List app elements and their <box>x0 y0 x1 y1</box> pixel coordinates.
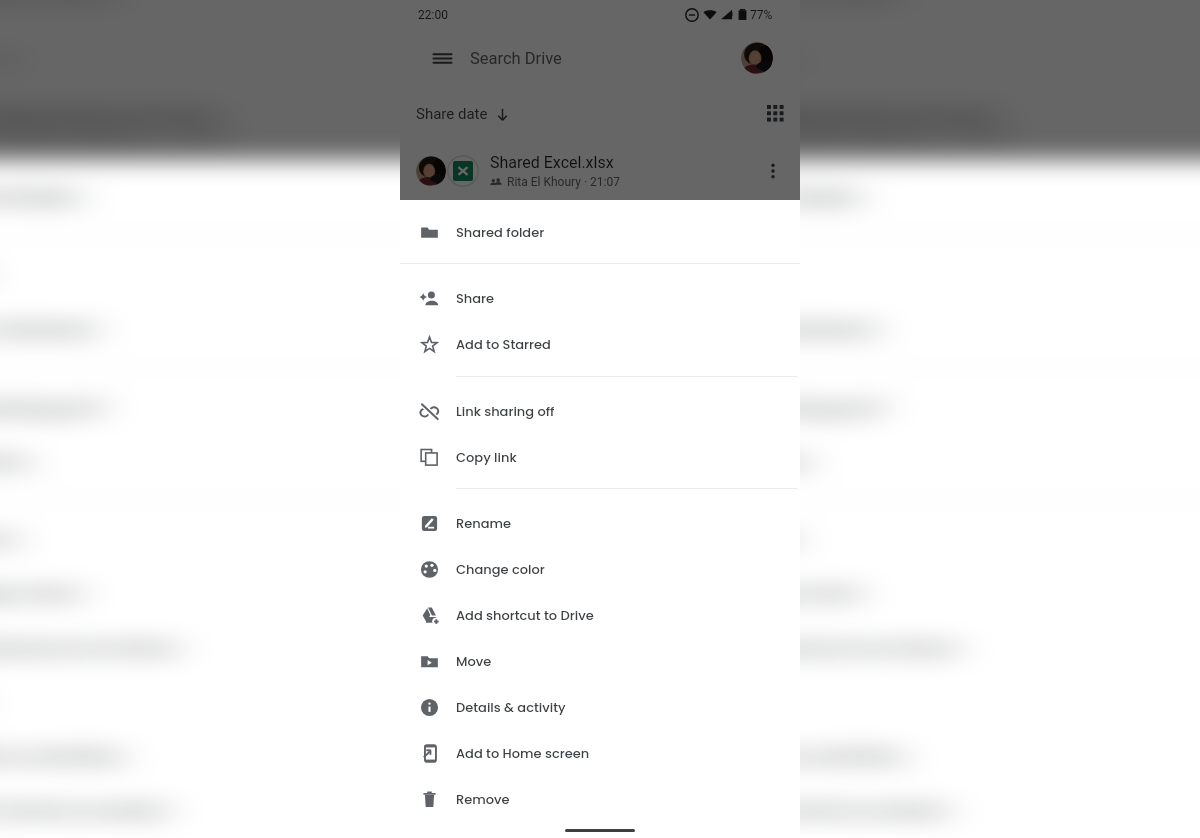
staticText: Shared folder <box>0 187 83 208</box>
button[interactable]: Details & activity <box>400 684 800 730</box>
staticText: Copy link <box>456 448 517 466</box>
other: Open navigation menu <box>433 49 452 68</box>
button[interactable]: Rename <box>400 500 800 546</box>
staticText: Add to Starred <box>689 319 874 340</box>
button[interactable]: Remove <box>400 776 800 822</box>
staticText: Rename <box>456 514 512 532</box>
staticText: Shared Excel.xlsx <box>490 153 614 172</box>
staticText: Details & activity <box>0 745 124 766</box>
button[interactable]: Add shortcut to Drive <box>0 621 580 675</box>
button[interactable]: Shared folder <box>580 171 1200 225</box>
staticText: Link sharing off <box>0 397 102 418</box>
button[interactable]: Link sharing off <box>0 381 580 435</box>
staticText: Add shortcut to Drive <box>689 637 958 658</box>
button[interactable]: Share <box>400 275 800 321</box>
staticText: Shared folder <box>689 187 863 208</box>
staticText: Add to Home screen <box>456 744 590 762</box>
button[interactable]: Switch to grid view <box>516 48 551 69</box>
button[interactable]: More options <box>762 160 784 182</box>
staticText: Remove <box>456 790 510 808</box>
staticText: Rita El Khoury · 21:07 <box>507 175 620 189</box>
staticText: Add to Home screen <box>0 799 170 820</box>
staticText: Share date <box>416 105 488 123</box>
staticText: Change color <box>0 583 83 604</box>
staticText: Copy link <box>0 451 28 473</box>
button[interactable]: Add to Starred <box>580 302 1200 356</box>
staticText: Add to Starred <box>456 335 551 353</box>
button[interactable]: Open navigation menu <box>0 0 547 22</box>
staticText: Rita El Khoury · 21:07 <box>9 131 229 147</box>
staticText: Link sharing off <box>689 397 882 418</box>
staticText: Link sharing off <box>456 402 555 420</box>
button[interactable]: Copy link <box>0 435 580 489</box>
button[interactable]: Add shortcut to Drive <box>400 592 800 638</box>
staticText: Search Drive <box>470 49 562 68</box>
staticText: Add to Home screen <box>689 799 950 820</box>
button[interactable]: Share <box>0 248 580 302</box>
staticText: Copy link <box>689 451 808 473</box>
staticText: 22:00 <box>418 8 448 22</box>
button[interactable]: Add to Home screen <box>580 783 1200 837</box>
staticText: Shared folder <box>456 223 545 241</box>
staticText: Share date <box>611 48 752 69</box>
button[interactable]: Change color <box>580 566 1200 620</box>
button[interactable]: Move <box>400 638 800 684</box>
button[interactable]: Share date <box>416 99 510 129</box>
button[interactable]: Open navigation menu <box>417 33 783 83</box>
button[interactable]: Account <box>741 42 773 74</box>
staticText: Details & activity <box>689 745 904 766</box>
staticText: Rita El Khoury · 21:07 <box>789 131 1009 147</box>
button[interactable]: Add to Starred <box>0 302 580 356</box>
staticText: Search Drive <box>716 0 896 5</box>
button[interactable]: Change color <box>0 566 580 620</box>
staticText: Add shortcut to Drive <box>456 606 594 624</box>
button[interactable]: Shared Excel.xlsx <box>400 141 800 200</box>
button[interactable]: Add to Home screen <box>400 730 800 776</box>
button[interactable]: Switch to grid view <box>767 105 785 123</box>
staticText: 77% <box>750 8 773 22</box>
button[interactable]: Details & activity <box>580 729 1200 783</box>
button[interactable]: Shared folder <box>0 171 580 225</box>
button[interactable]: Change color <box>400 546 800 592</box>
button[interactable]: Details & activity <box>0 729 580 783</box>
staticText: Move <box>456 652 492 670</box>
staticText: Shared Excel.xlsx <box>755 105 997 127</box>
button[interactable]: Shared Excel.xlsx <box>0 91 580 160</box>
button[interactable]: Move <box>0 675 580 729</box>
button[interactable]: Shared Excel.xlsx <box>580 91 1200 160</box>
staticText: Change color <box>456 560 545 578</box>
staticText: Share <box>456 289 495 307</box>
button[interactable]: Link sharing off <box>400 388 800 434</box>
staticText: Change color <box>689 583 863 604</box>
button[interactable]: Rename <box>0 512 580 566</box>
button[interactable]: Add to Home screen <box>0 783 580 837</box>
button[interactable]: Add to Starred <box>400 321 800 367</box>
button[interactable]: Share date <box>611 41 794 77</box>
button[interactable]: Shared folder <box>400 209 800 255</box>
button[interactable]: Open navigation menu <box>613 0 1200 22</box>
staticText: Add to Starred <box>0 319 94 340</box>
button[interactable]: Add shortcut to Drive <box>580 621 1200 675</box>
button[interactable]: Copy link <box>400 434 800 480</box>
staticText: Details & activity <box>456 698 566 716</box>
button[interactable]: Link sharing off <box>580 381 1200 435</box>
